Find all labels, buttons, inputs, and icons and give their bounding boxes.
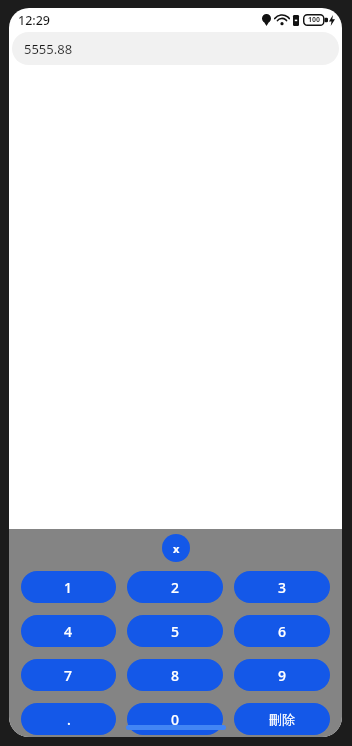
staticText: 5555.88 (24, 40, 73, 58)
button[interactable]: 7 (21, 659, 116, 691)
button[interactable]: 5555.88 (12, 32, 339, 65)
staticText: 6 (278, 622, 287, 641)
staticText: 7 (64, 666, 73, 685)
button[interactable]: Close keypad (162, 534, 190, 562)
staticText: 0 (171, 710, 180, 729)
button[interactable]: 6 (234, 615, 330, 647)
staticText: . (67, 710, 71, 729)
staticText: 12:29 (18, 12, 51, 29)
button[interactable]: 4 (21, 615, 116, 647)
button[interactable]: 3 (234, 571, 330, 603)
staticText: 100 (308, 15, 321, 25)
staticText: 刪除 (269, 711, 295, 727)
staticText: 4 (64, 622, 73, 641)
staticText: 2 (171, 578, 180, 597)
staticText: 3 (278, 578, 287, 597)
staticText: 8 (171, 666, 180, 685)
staticText: x (173, 541, 180, 556)
button[interactable]: . (21, 703, 116, 735)
button[interactable]: 刪除 (234, 703, 330, 735)
staticText: 1 (64, 578, 73, 597)
button[interactable]: 9 (234, 659, 330, 691)
button[interactable]: 1 (21, 571, 116, 603)
staticText: 5 (171, 622, 180, 641)
staticText: 9 (278, 666, 287, 685)
button[interactable]: 2 (127, 571, 223, 603)
button[interactable]: 8 (127, 659, 223, 691)
button[interactable]: 0 (127, 703, 223, 735)
button[interactable]: 5 (127, 615, 223, 647)
